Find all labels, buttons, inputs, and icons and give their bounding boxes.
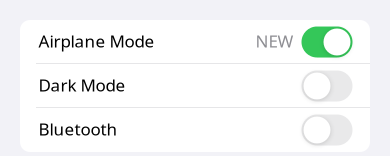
button[interactable]: Airplane Mode: [20, 20, 370, 64]
staticText: NEW: [255, 30, 293, 52]
staticText: Dark Mode: [38, 74, 125, 96]
button[interactable]: Bluetooth: [20, 108, 370, 152]
staticText: Bluetooth: [38, 118, 117, 140]
staticText: Airplane Mode: [38, 30, 154, 52]
button[interactable]: Dark Mode: [20, 64, 370, 108]
